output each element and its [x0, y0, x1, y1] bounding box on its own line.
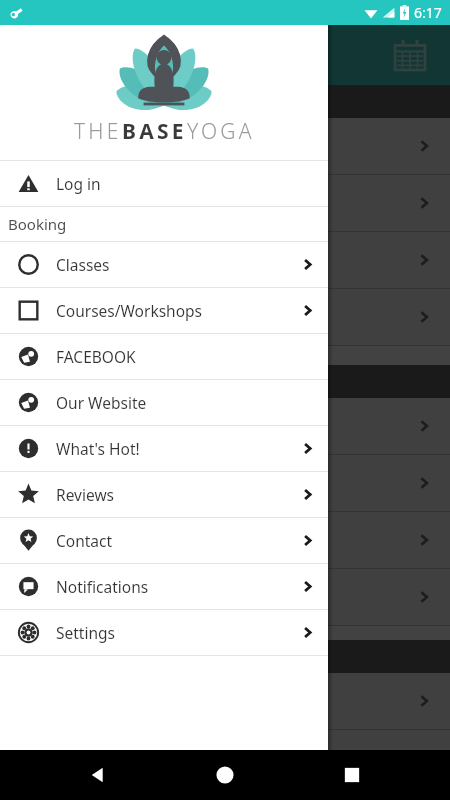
button[interactable] — [0, 175, 450, 231]
staticText: YOGA — [187, 117, 255, 146]
button[interactable]: Home — [212, 762, 238, 788]
button[interactable]: FACEBOOK — [0, 334, 328, 379]
button[interactable] — [0, 673, 450, 729]
button[interactable]: Courses/Workshops — [0, 288, 328, 333]
button[interactable]: Settings — [0, 610, 328, 655]
button[interactable]: Classes — [0, 242, 328, 287]
staticText: THE — [74, 117, 122, 146]
button[interactable]: Recent apps — [339, 762, 365, 788]
button[interactable] — [0, 730, 450, 786]
staticText: Classes — [56, 254, 110, 275]
button[interactable] — [0, 398, 450, 454]
button[interactable] — [0, 118, 450, 174]
button[interactable]: What's Hot! — [0, 426, 328, 471]
button[interactable]: Calendar — [395, 40, 425, 70]
button[interactable]: Log in — [0, 161, 328, 206]
staticText: Settings — [56, 622, 115, 643]
button[interactable] — [0, 569, 450, 625]
button[interactable] — [0, 512, 450, 568]
staticText: Contact — [56, 530, 113, 551]
button[interactable] — [0, 289, 450, 345]
button[interactable]: Contact — [0, 518, 328, 563]
button[interactable]: Notifications — [0, 564, 328, 609]
staticText: Notifications — [56, 576, 149, 597]
staticText: BASE — [122, 117, 187, 146]
button[interactable] — [0, 455, 450, 511]
button[interactable] — [0, 232, 450, 288]
staticText: What's Hot! — [56, 438, 140, 459]
button[interactable]: Back — [85, 762, 111, 788]
staticText: Our Website — [56, 392, 147, 413]
staticText: Courses/Workshops — [56, 300, 203, 321]
staticText: Booking — [8, 214, 67, 234]
button[interactable]: Our Website — [0, 380, 328, 425]
staticText: Log in — [56, 173, 101, 194]
staticText: Reviews — [56, 484, 114, 505]
staticText: FACEBOOK — [56, 346, 136, 367]
button[interactable]: Reviews — [0, 472, 328, 517]
staticText: 6:17 — [414, 3, 442, 22]
